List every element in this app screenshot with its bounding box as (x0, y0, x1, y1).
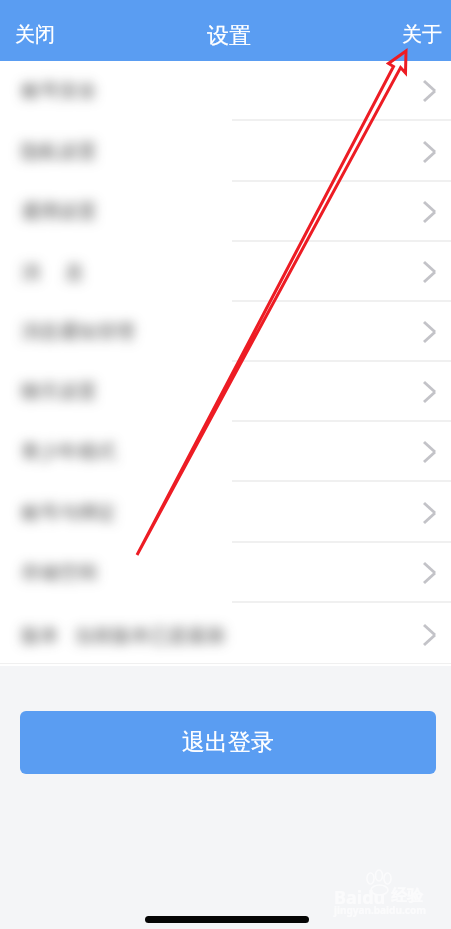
button[interactable]: 退出登录 (20, 711, 436, 774)
button[interactable]: 通用设置 (0, 182, 451, 242)
button[interactable]: 消 息 (0, 242, 451, 302)
staticText: 消 息 (21, 259, 84, 285)
button[interactable]: 存储空间 (0, 543, 451, 603)
staticText: 存储空间 (21, 561, 97, 585)
staticText: 设置 (207, 22, 251, 50)
button[interactable]: 隐私设置 (0, 121, 451, 182)
button[interactable]: 消息通知管理 (0, 302, 451, 362)
button[interactable]: 关闭 (0, 16, 70, 56)
button[interactable]: 青少年模式 (0, 422, 451, 482)
staticText: 关于 (402, 22, 442, 47)
staticText: 关闭 (15, 22, 55, 47)
staticText: Baidu (334, 885, 386, 910)
staticText: 退出登录 (182, 728, 274, 757)
button[interactable]: 聊天设置 (0, 362, 451, 422)
staticText: 消息通知管理 (21, 320, 135, 344)
staticText: 账号安全 (21, 79, 97, 103)
button[interactable]: 版本 当前版本已是最新 (0, 603, 451, 666)
staticText: 通用设置 (21, 200, 97, 224)
staticText: 版本 当前版本已是最新 (21, 622, 226, 648)
staticText: 隐私设置 (21, 140, 97, 164)
button[interactable]: 关于 (387, 16, 451, 56)
staticText: 青少年模式 (21, 440, 116, 464)
staticText: 经验 (391, 886, 423, 906)
button[interactable]: 账号安全 (0, 61, 451, 121)
staticText: 聊天设置 (21, 380, 97, 404)
button[interactable]: 账号与绑定 (0, 482, 451, 543)
staticText: 账号与绑定 (21, 501, 116, 525)
